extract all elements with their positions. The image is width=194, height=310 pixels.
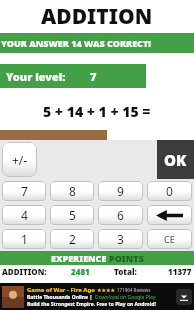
button[interactable]: 2 [50,229,94,249]
staticText: Build the Strongest Empire. Free to Play… [27,301,156,308]
button[interactable]: CE [147,229,192,249]
staticText: 6 [117,207,124,223]
button[interactable]: Your level: [0,64,146,88]
button[interactable]: +/- [2,142,37,177]
staticText: Game of War - Fire Age [27,286,95,294]
staticText: 171964 Reviews [117,287,151,293]
staticText: ADDITION [41,2,153,31]
staticText: ADDITION: [2,266,47,277]
staticText: 5 + 14 + 1 + 15 = [43,102,151,120]
staticText: 1 [21,231,28,247]
staticText: POINTS [109,252,144,264]
button[interactable]: 5 [50,205,94,225]
button[interactable]: Game of War - Fire Age [0,283,194,310]
button[interactable]: 0 [147,181,192,201]
staticText: Your level: [6,69,66,84]
staticText: 4 [21,207,28,223]
staticText: EXPERIENCE [51,252,109,264]
staticText: 0 [166,183,173,199]
button[interactable]: 6 [98,205,143,225]
staticText: 2 [69,231,76,247]
staticText: CE [164,233,175,245]
button[interactable]: 9 [98,181,143,201]
staticText: 3 [117,231,124,247]
button[interactable]: 1 [2,229,46,249]
staticText: 8 [69,183,76,199]
staticText: Total: [114,266,137,277]
staticText: Battle Thousands Online | [27,294,93,301]
button[interactable]: 4 [2,205,46,225]
button[interactable]: OK [157,140,194,179]
staticText: ★★★★ [97,287,115,293]
staticText: 7 [21,183,28,199]
staticText: Download on Google Play [95,294,156,301]
staticText: +/- [12,152,28,168]
button[interactable]: 8 [50,181,94,201]
staticText: 2481 [71,266,90,277]
staticText: 9 [117,183,124,199]
staticText: OK [164,150,187,170]
button[interactable]: 3 [98,229,143,249]
staticText: 5 [69,207,76,223]
staticText: 11377 [168,266,192,277]
button[interactable]: Install [176,289,192,305]
button[interactable]: 7 [2,181,46,201]
staticText: 7 [90,69,97,84]
button[interactable]: Backspace [147,205,192,225]
staticText: YOUR ANSWER 14 WAS CORRECT! [1,37,151,49]
